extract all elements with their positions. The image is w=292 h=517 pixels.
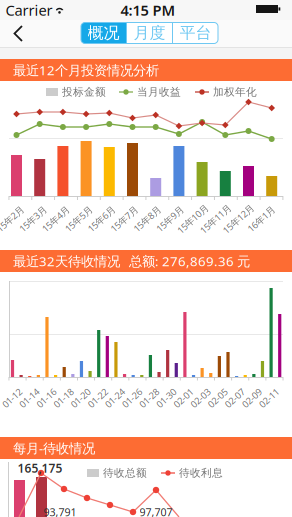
- staticText: 平台: [179, 23, 211, 43]
- staticText: 加权年化: [213, 85, 257, 98]
- staticText: 16年1月: [245, 213, 278, 225]
- staticText: 当月收益: [137, 85, 181, 98]
- button[interactable]: 平台: [173, 22, 218, 43]
- staticText: 15年3月: [16, 213, 49, 225]
- staticText: 4:15 PM: [120, 0, 175, 20]
- staticText: 15年10月: [174, 213, 212, 225]
- staticText: 01-18: [52, 392, 75, 404]
- staticText: Carrier: [5, 0, 52, 20]
- staticText: 概况: [87, 23, 119, 43]
- staticText: 15年2月: [0, 213, 26, 225]
- staticText: 02-05: [206, 392, 229, 404]
- staticText: 02-01: [172, 392, 195, 404]
- staticText: 15年4月: [39, 213, 72, 225]
- staticText: 01-12: [0, 392, 23, 404]
- staticText: 最近32天待收情况: [13, 252, 120, 270]
- staticText: 15年9月: [153, 213, 186, 225]
- staticText: 待收总额: [103, 466, 147, 479]
- staticText: 待收利息: [179, 466, 223, 479]
- staticText: 02-07: [223, 392, 246, 404]
- staticText: 15年6月: [85, 213, 118, 225]
- staticText: 01-28: [137, 392, 160, 404]
- staticText: 15年5月: [62, 213, 95, 225]
- staticText: 01-16: [35, 392, 58, 404]
- staticText: 15年7月: [108, 213, 141, 225]
- staticText: 最近12个月投资情况分析: [13, 61, 159, 79]
- staticText: 01-26: [120, 392, 143, 404]
- staticText: 投标金额: [62, 85, 106, 98]
- staticText: 15年11月: [196, 213, 234, 225]
- staticText: 月度: [133, 23, 165, 43]
- staticText: 01-24: [103, 392, 126, 404]
- staticText: 93,791: [43, 505, 76, 517]
- button[interactable]: Back: [0, 0, 292, 517]
- staticText: 15年8月: [130, 213, 163, 225]
- staticText: 02-03: [189, 392, 212, 404]
- staticText: 165,175: [17, 460, 62, 476]
- staticText: 每月-待收情况: [13, 439, 95, 457]
- staticText: 02-09: [240, 392, 263, 404]
- button[interactable]: 月度: [127, 22, 172, 43]
- button[interactable]: 概况: [81, 22, 126, 43]
- staticText: 01-22: [86, 392, 109, 404]
- staticText: 总额: 276,869.36 元: [129, 252, 250, 270]
- staticText: 97,707: [139, 505, 172, 517]
- staticText: 01-14: [18, 392, 41, 404]
- staticText: 02-11: [257, 392, 280, 404]
- staticText: 01-20: [69, 392, 92, 404]
- staticText: 01-30: [155, 392, 178, 404]
- staticText: 15年12月: [219, 213, 257, 225]
